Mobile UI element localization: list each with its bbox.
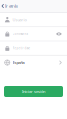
button[interactable]: Iniciar sesión	[4, 86, 63, 97]
staticText: España	[12, 60, 24, 65]
staticText: Ir atrás	[5, 3, 18, 9]
button[interactable]: España	[0, 56, 67, 69]
button[interactable]: Ir atrás	[0, 0, 22, 12]
staticText: Usuario	[12, 17, 26, 22]
staticText: Repetir clave	[12, 46, 30, 50]
staticText: Contraseña	[12, 32, 27, 36]
staticText: Iniciar sesión	[22, 89, 45, 94]
